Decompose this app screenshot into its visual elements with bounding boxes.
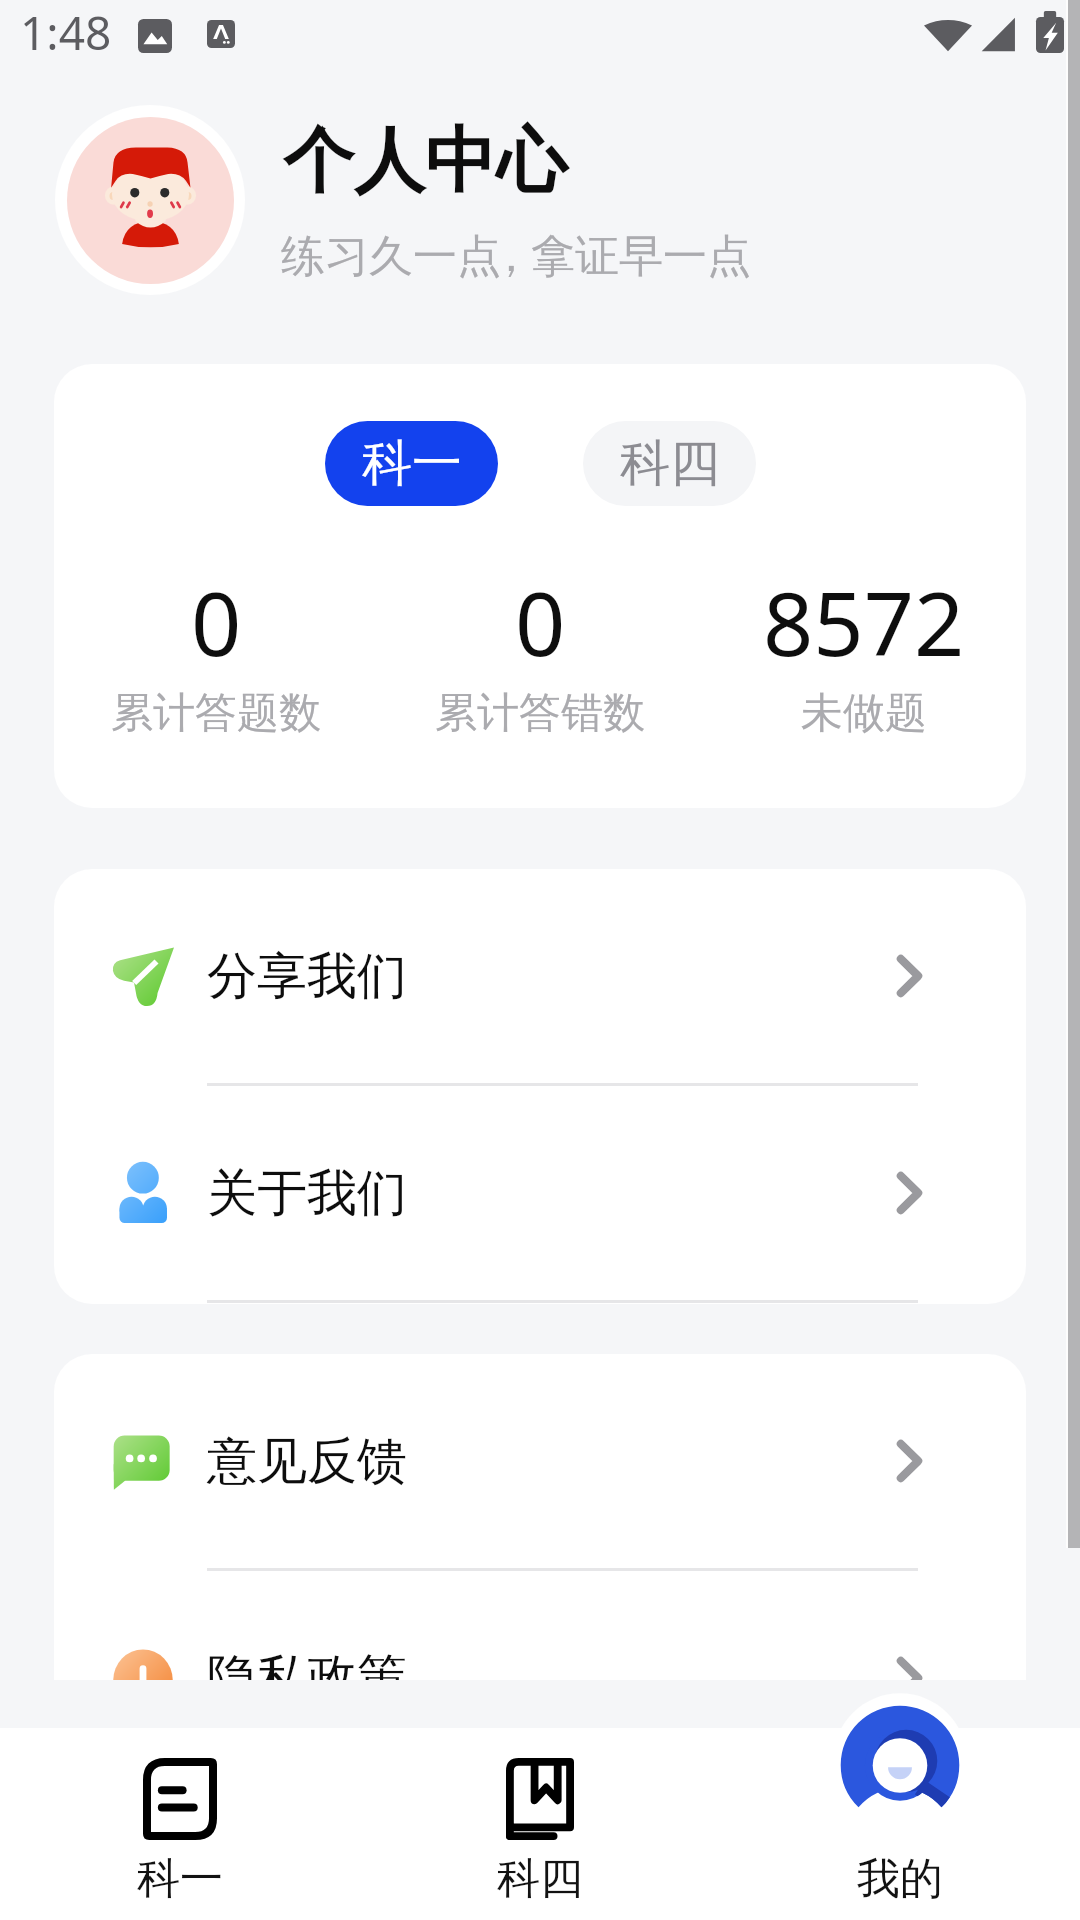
staticText: 隐私政策 [207,1647,407,1680]
staticText: 0 [191,562,242,682]
staticText: 练习久一点 [281,229,501,284]
staticText: 1:48 [20,1,112,64]
staticText: 关于我们 [207,1162,407,1225]
staticText: 科四 [620,432,720,495]
staticText: ， [489,229,519,284]
button[interactable]: 隐私政策 [54,1571,1026,1680]
staticText: 科四 [497,1852,583,1906]
button[interactable]: 科四 [360,1728,720,1920]
staticText: 累计答题数 [111,687,321,740]
staticText: 科一 [137,1852,223,1906]
button[interactable]: 科一 [0,1728,360,1920]
staticText: 个人中心 [283,117,567,206]
staticText: 0 [515,562,566,682]
staticText: 拿证早一点 [531,229,751,284]
staticText: 分享我们 [207,945,407,1008]
button[interactable]: 分享我们 [54,869,1026,1083]
button[interactable]: 意见反馈 [54,1354,1026,1568]
staticText: 意见反馈 [207,1430,407,1493]
button[interactable]: 我的 [720,1728,1080,1920]
staticText: 8572 [763,562,965,682]
staticText: 我的 [857,1852,943,1906]
button[interactable]: 科四 [583,421,756,506]
staticText: 科一 [362,432,462,495]
button[interactable]: 头像 [55,105,245,295]
button[interactable]: 关于我们 [54,1086,1026,1300]
staticText: 未做题 [801,687,927,740]
staticText: 累计答错数 [435,687,645,740]
button[interactable]: 科一 [325,421,498,506]
